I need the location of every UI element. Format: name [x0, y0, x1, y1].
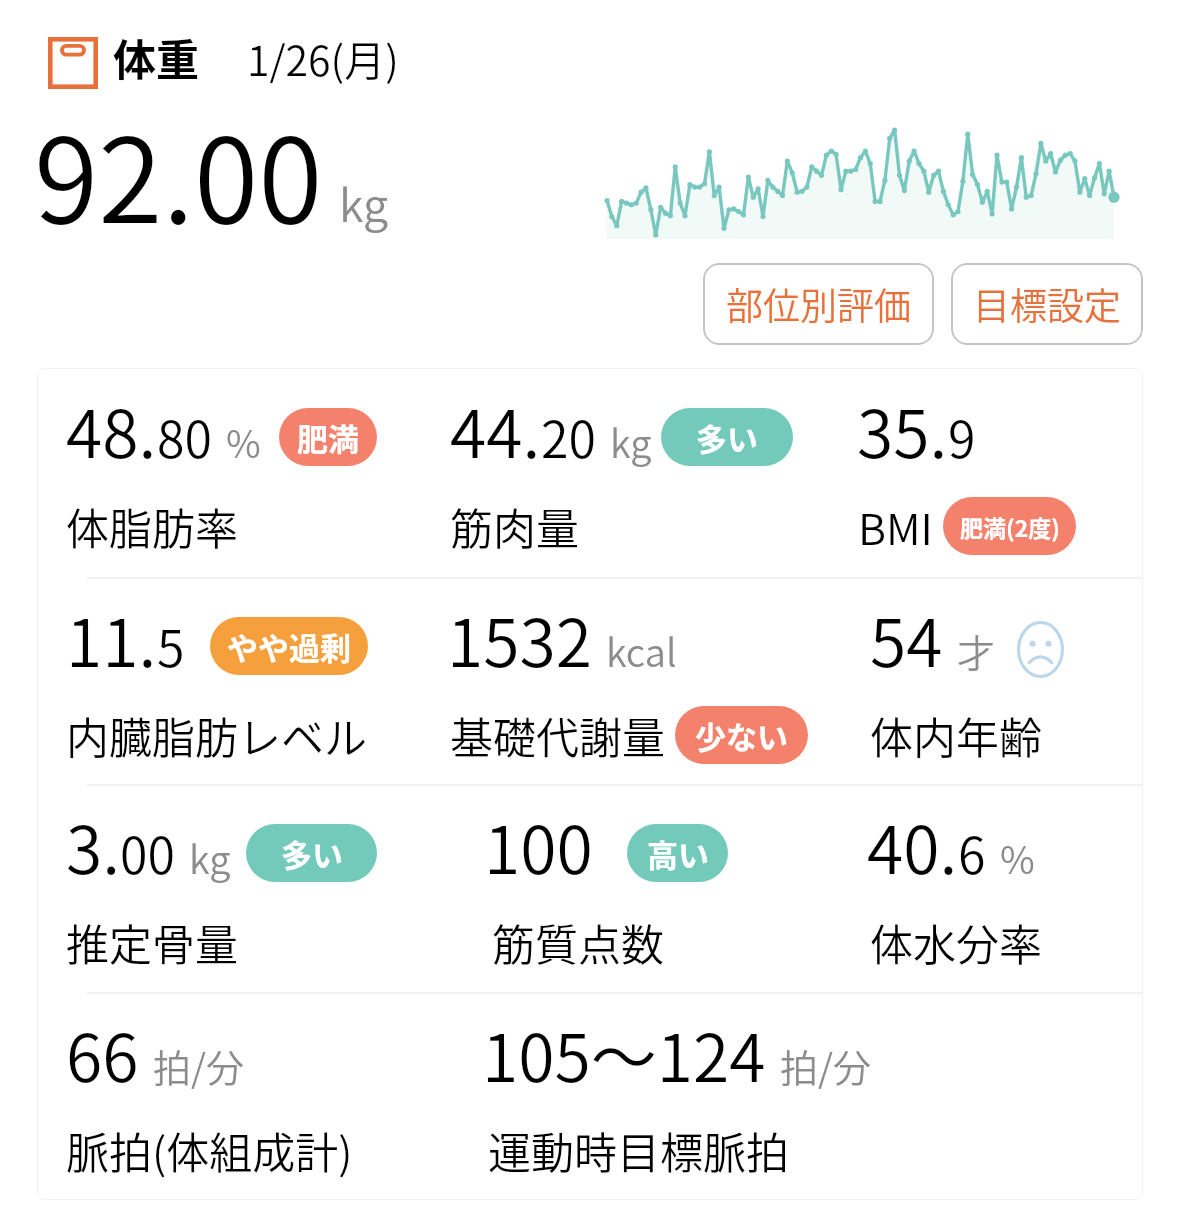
staticText: 3.	[66, 797, 120, 893]
button[interactable]: 体水分率	[870, 911, 1042, 973]
staticText: 80	[157, 400, 212, 472]
button[interactable]: 66	[66, 1005, 244, 1101]
staticText: BMI	[858, 495, 933, 557]
staticText: 才	[957, 623, 996, 678]
button[interactable]: 基礎代謝量	[450, 704, 808, 766]
staticText: 9	[948, 400, 976, 472]
staticText: 54	[870, 590, 943, 686]
staticText: 11.	[66, 590, 157, 686]
staticText: やや過剰	[227, 624, 351, 669]
button[interactable]: 体脂肪率	[66, 495, 238, 557]
staticText: 推定骨量	[66, 911, 238, 973]
staticText: 6	[958, 816, 986, 888]
staticText: 目標設定	[973, 277, 1121, 331]
button[interactable]: 目標設定	[951, 263, 1143, 345]
staticText: 運動時目標脈拍	[488, 1119, 789, 1181]
staticText: kg	[189, 830, 231, 885]
staticText: 体水分率	[870, 911, 1042, 973]
staticText: 部位別評価	[726, 277, 911, 331]
staticText: 体内年齢	[870, 704, 1042, 766]
button[interactable]: 筋肉量	[450, 495, 579, 557]
button[interactable]: 運動時目標脈拍	[488, 1119, 789, 1181]
button[interactable]: 100	[484, 797, 728, 893]
button[interactable]: 35.	[857, 381, 976, 477]
staticText: 20	[541, 400, 596, 472]
staticText: 筋肉量	[450, 495, 579, 557]
button[interactable]: 11.	[66, 590, 368, 686]
staticText: 体脂肪率	[66, 495, 238, 557]
staticText: 66	[66, 1005, 139, 1101]
staticText: 拍/分	[153, 1038, 244, 1093]
staticText: 40.	[867, 797, 958, 893]
staticText: 筋質点数	[492, 911, 664, 973]
staticText: 92.00	[34, 87, 323, 256]
staticText: %	[1000, 830, 1035, 885]
staticText: kcal	[606, 623, 677, 678]
staticText: 多い	[696, 415, 758, 460]
staticText: 1/26(月)	[247, 28, 399, 87]
button[interactable]: 54	[870, 590, 1064, 686]
staticText: kg	[610, 414, 652, 469]
staticText: 少ない	[695, 713, 788, 758]
button[interactable]: Weight scale	[48, 37, 98, 89]
button[interactable]: 体内年齢	[870, 704, 1042, 766]
staticText: 内臓脂肪レベル	[66, 704, 367, 766]
button[interactable]: 3.	[66, 797, 377, 893]
button[interactable]: 44.	[450, 381, 793, 477]
button[interactable]: 筋質点数	[492, 911, 664, 973]
staticText: 44.	[450, 381, 541, 477]
staticText: kg	[339, 170, 389, 235]
button[interactable]: 内臓脂肪レベル	[66, 704, 367, 766]
staticText: 105〜124	[482, 1005, 766, 1101]
staticText: 1532	[447, 590, 592, 686]
button[interactable]: 1532	[447, 590, 677, 686]
staticText: 00	[120, 816, 175, 888]
button[interactable]: 40.	[867, 797, 1035, 893]
staticText: 肥満(2度)	[960, 510, 1060, 543]
button[interactable]: 48.	[66, 381, 377, 477]
staticText: 体重	[113, 26, 199, 88]
staticText: 多い	[281, 831, 343, 876]
button[interactable]: 脈拍(体組成計)	[66, 1119, 353, 1181]
staticText: 拍/分	[780, 1038, 871, 1093]
staticText: 基礎代謝量	[450, 704, 665, 766]
button[interactable]: 105〜124	[482, 1005, 871, 1101]
staticText: 脈拍(体組成計)	[66, 1119, 353, 1181]
staticText: %	[226, 414, 261, 469]
button[interactable]: 部位別評価	[703, 263, 934, 345]
staticText: 5	[157, 609, 185, 681]
button[interactable]: BMI	[858, 495, 1076, 557]
staticText: 高い	[647, 831, 709, 876]
button[interactable]: 推定骨量	[66, 911, 238, 973]
staticText: 100	[484, 797, 593, 893]
staticText: 35.	[857, 381, 948, 477]
staticText: 肥満	[297, 415, 359, 460]
staticText: 48.	[66, 381, 157, 477]
